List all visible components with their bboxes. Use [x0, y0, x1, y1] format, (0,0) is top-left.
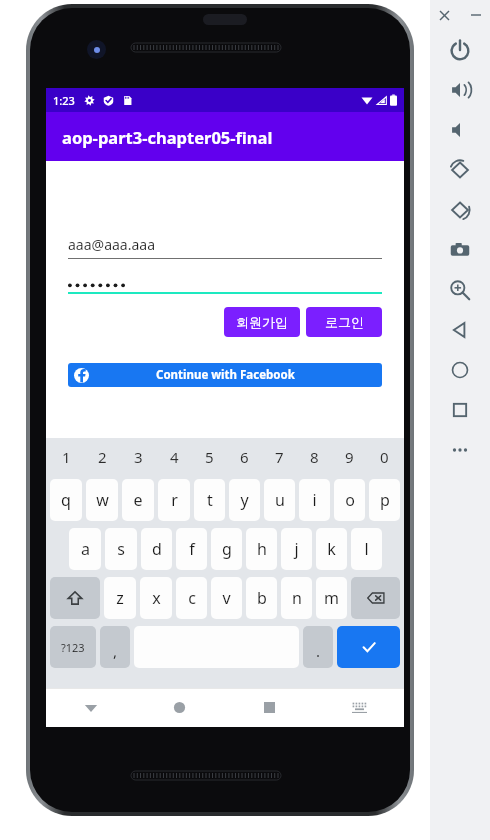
button[interactable]: 9: [332, 438, 367, 475]
button[interactable]: 3: [120, 438, 156, 475]
button[interactable]: Volume up: [430, 70, 490, 110]
button[interactable]: ?123: [50, 626, 96, 668]
staticText: v: [222, 587, 231, 609]
button[interactable]: Rotate right: [430, 190, 490, 230]
button[interactable]: q: [50, 479, 82, 521]
button[interactable]: d: [141, 528, 172, 570]
button[interactable]: t: [194, 479, 225, 521]
staticText: d: [152, 538, 162, 560]
staticText: c: [188, 587, 196, 609]
button[interactable]: [68, 276, 382, 294]
staticText: 9: [345, 447, 354, 467]
staticText: 1:23: [53, 93, 75, 108]
button[interactable]: l: [351, 528, 382, 570]
staticText: l: [364, 538, 369, 560]
staticText: q: [61, 489, 71, 511]
button[interactable]: Screenshot: [430, 230, 490, 270]
staticText: e: [133, 489, 143, 511]
button[interactable]: u: [264, 479, 295, 521]
button[interactable]: Zoom: [430, 270, 490, 310]
button[interactable]: x: [140, 577, 172, 619]
staticText: o: [345, 489, 355, 511]
staticText: 2: [98, 447, 107, 467]
button[interactable]: Minimize: [466, 5, 486, 25]
staticText: b: [257, 587, 267, 609]
staticText: aaa@aaa.aaa: [68, 235, 156, 254]
button[interactable]: Switch keyboard: [314, 688, 404, 727]
staticText: m: [324, 587, 339, 609]
button[interactable]: n: [281, 577, 312, 619]
staticText: s: [117, 538, 125, 560]
button[interactable]: p: [369, 479, 400, 521]
button[interactable]: i: [299, 479, 330, 521]
button[interactable]: 2: [84, 438, 120, 475]
staticText: h: [257, 538, 267, 560]
staticText: aop-part3-chapter05-final: [62, 126, 273, 148]
button[interactable]: c: [176, 577, 207, 619]
button[interactable]: .: [303, 626, 333, 668]
button[interactable]: 회원가입: [224, 307, 300, 337]
staticText: 로그인: [325, 314, 364, 330]
staticText: y: [240, 489, 249, 511]
staticText: 7: [275, 447, 284, 467]
staticText: ?123: [61, 640, 85, 655]
staticText: .: [316, 641, 321, 661]
staticText: 6: [240, 447, 249, 467]
button[interactable]: ,: [100, 626, 130, 668]
button[interactable]: w: [86, 479, 118, 521]
button[interactable]: Home: [430, 350, 490, 390]
button[interactable]: 0: [367, 438, 402, 475]
button[interactable]: r: [158, 479, 190, 521]
button[interactable]: Continue with Facebook: [68, 363, 382, 387]
button[interactable]: z: [104, 577, 136, 619]
staticText: 8: [310, 447, 319, 467]
button[interactable]: Shift: [50, 577, 100, 619]
button[interactable]: Power: [430, 30, 490, 70]
button[interactable]: Volume down: [430, 110, 490, 150]
button[interactable]: 5: [192, 438, 227, 475]
button[interactable]: Close: [434, 5, 454, 25]
button[interactable]: Rotate left: [430, 150, 490, 190]
staticText: ,: [113, 641, 118, 661]
button[interactable]: b: [246, 577, 277, 619]
button[interactable]: a: [69, 528, 101, 570]
staticText: f: [189, 538, 195, 560]
button[interactable]: h: [246, 528, 277, 570]
button[interactable]: 로그인: [306, 307, 382, 337]
staticText: a: [81, 538, 90, 560]
button[interactable]: 1: [48, 438, 84, 475]
button[interactable]: m: [316, 577, 347, 619]
staticText: t: [207, 489, 213, 511]
button[interactable]: k: [316, 528, 347, 570]
button[interactable]: aaa@aaa.aaa: [68, 235, 382, 259]
button[interactable]: g: [211, 528, 242, 570]
staticText: 1: [62, 447, 71, 467]
button[interactable]: More: [430, 430, 490, 470]
button[interactable]: o: [334, 479, 365, 521]
button[interactable]: Overview: [224, 688, 314, 727]
button[interactable]: y: [229, 479, 260, 521]
button[interactable]: 4: [156, 438, 192, 475]
staticText: p: [380, 489, 390, 511]
button[interactable]: Enter: [337, 626, 400, 668]
staticText: j: [294, 538, 299, 560]
staticText: 0: [380, 447, 389, 467]
button[interactable]: 7: [262, 438, 297, 475]
button[interactable]: e: [122, 479, 154, 521]
button[interactable]: j: [281, 528, 312, 570]
button[interactable]: Backspace: [351, 577, 400, 619]
staticText: z: [116, 587, 124, 609]
button[interactable]: f: [176, 528, 207, 570]
staticText: x: [152, 587, 161, 609]
staticText: g: [222, 538, 232, 560]
button[interactable]: Home: [135, 688, 224, 727]
button[interactable]: s: [105, 528, 137, 570]
button[interactable]: Hide keyboard: [46, 688, 135, 727]
button[interactable]: Back: [430, 310, 490, 350]
button[interactable]: 6: [227, 438, 262, 475]
button[interactable]: v: [211, 577, 242, 619]
button[interactable]: 8: [297, 438, 332, 475]
button[interactable]: Overview: [430, 390, 490, 430]
staticText: k: [327, 538, 336, 560]
